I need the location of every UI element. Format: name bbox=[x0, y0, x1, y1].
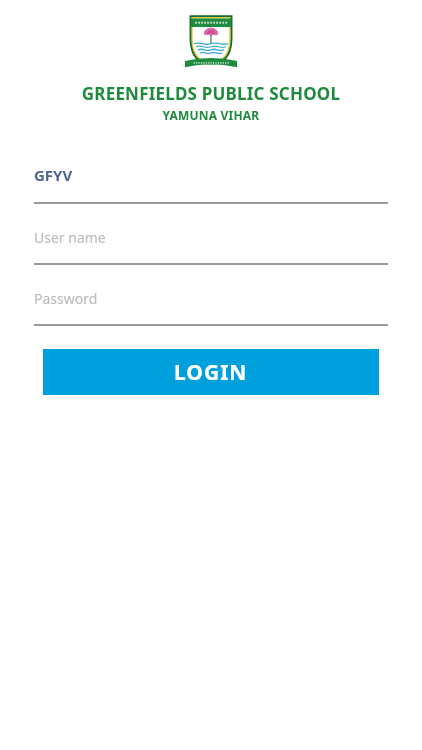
button[interactable]: User name bbox=[34, 228, 388, 265]
staticText: User name bbox=[34, 228, 106, 247]
other: School crest bbox=[182, 12, 240, 76]
button[interactable]: LOGIN bbox=[43, 349, 379, 395]
staticText: YAMUNA VIHAR bbox=[0, 107, 422, 123]
button[interactable]: Password bbox=[34, 289, 388, 326]
staticText: GREENFIELDS PUBLIC SCHOOL bbox=[0, 82, 422, 105]
staticText: LOGIN bbox=[174, 358, 248, 387]
staticText: Password bbox=[34, 289, 98, 308]
button[interactable]: GFYV bbox=[34, 165, 388, 204]
staticText: GFYV bbox=[34, 165, 73, 185]
